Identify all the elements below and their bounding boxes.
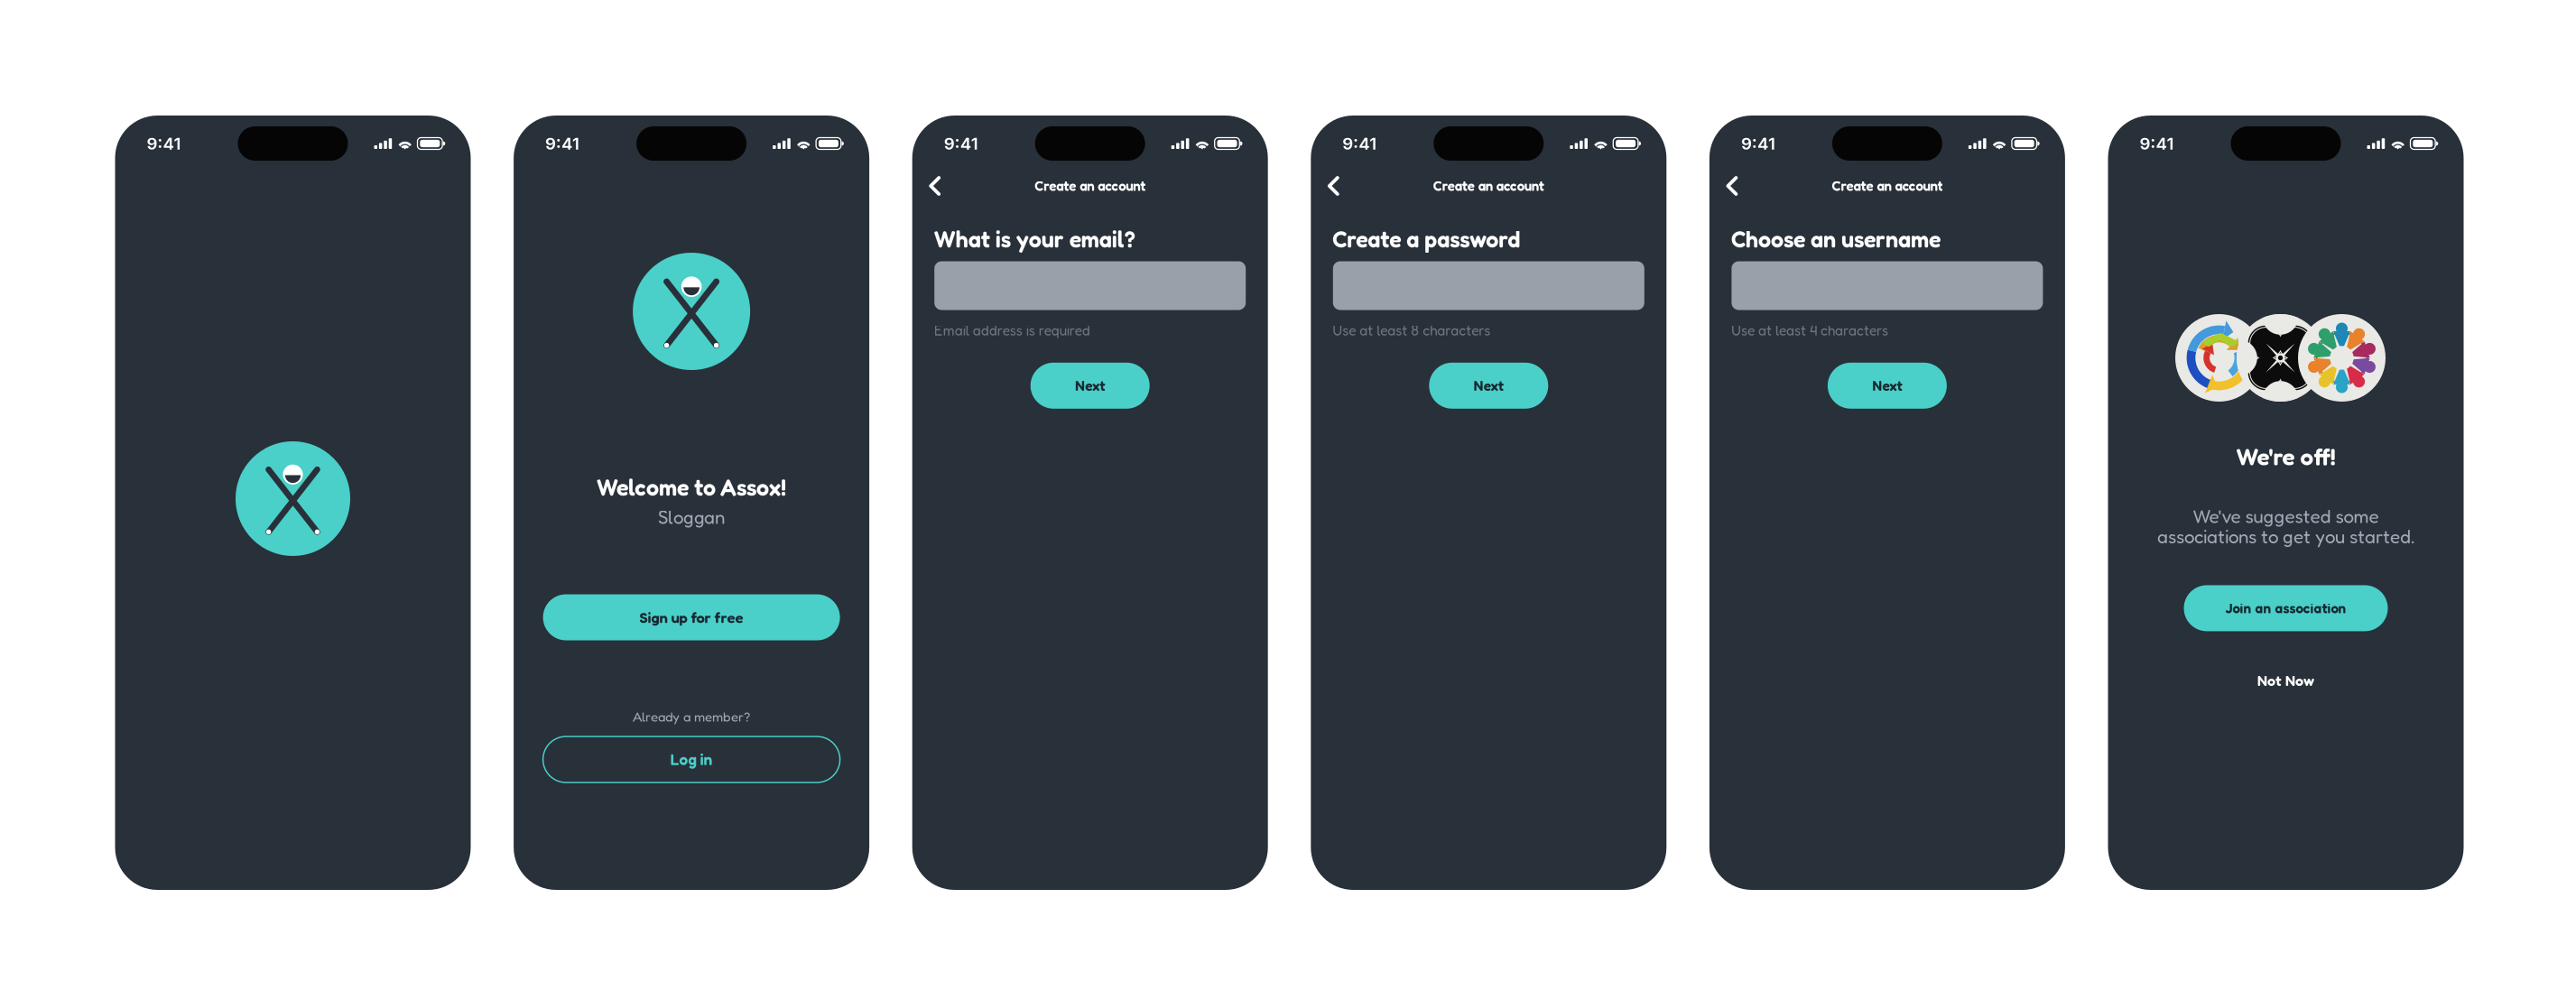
button[interactable]: Log in xyxy=(543,736,840,782)
staticText: Create an account xyxy=(1035,178,1146,194)
staticText: 9:41 xyxy=(1741,133,1775,154)
staticText: 9:41 xyxy=(2140,133,2174,154)
staticText: Welcome to Assox! xyxy=(597,474,786,501)
staticText: 9:41 xyxy=(944,133,978,154)
staticText: What is your email? xyxy=(934,225,1135,253)
staticText: Email address is required xyxy=(934,322,1090,339)
staticText: Join an association xyxy=(2225,600,2346,617)
button[interactable]: Next xyxy=(1030,363,1150,409)
staticText: Create an account xyxy=(1433,178,1544,194)
button[interactable]: Next xyxy=(1828,363,1947,409)
staticText: Log in xyxy=(670,750,713,769)
button[interactable]: Back xyxy=(1717,168,1747,204)
button[interactable]: Back xyxy=(919,168,950,204)
button[interactable]: Not Now xyxy=(2232,669,2340,692)
button[interactable]: Join an association xyxy=(2184,585,2388,631)
staticText: Next xyxy=(1872,377,1902,394)
staticText: 9:41 xyxy=(147,133,181,154)
button[interactable]: Back xyxy=(1318,168,1349,204)
staticText: Not Now xyxy=(2257,672,2314,689)
staticText: We've suggested some xyxy=(2193,505,2379,527)
staticText: Use at least 8 characters xyxy=(1332,322,1490,339)
staticText: Sign up for free xyxy=(640,608,743,626)
staticText: Create a password xyxy=(1332,225,1520,253)
button[interactable]: Next xyxy=(1429,363,1548,409)
staticText: Already a member? xyxy=(633,708,750,725)
staticText: associations to get you started. xyxy=(2157,525,2414,548)
staticText: We're off! xyxy=(2236,443,2335,471)
staticText: Use at least 4 characters xyxy=(1731,322,1888,339)
staticText: 9:41 xyxy=(545,133,580,154)
staticText: Choose an username xyxy=(1731,225,1940,253)
staticText: Next xyxy=(1075,377,1105,394)
staticText: Sloggan xyxy=(658,506,725,528)
staticText: Create an account xyxy=(1832,178,1943,194)
staticText: 9:41 xyxy=(1342,133,1377,154)
staticText: Next xyxy=(1474,377,1504,394)
button[interactable]: Sign up for free xyxy=(543,594,840,640)
